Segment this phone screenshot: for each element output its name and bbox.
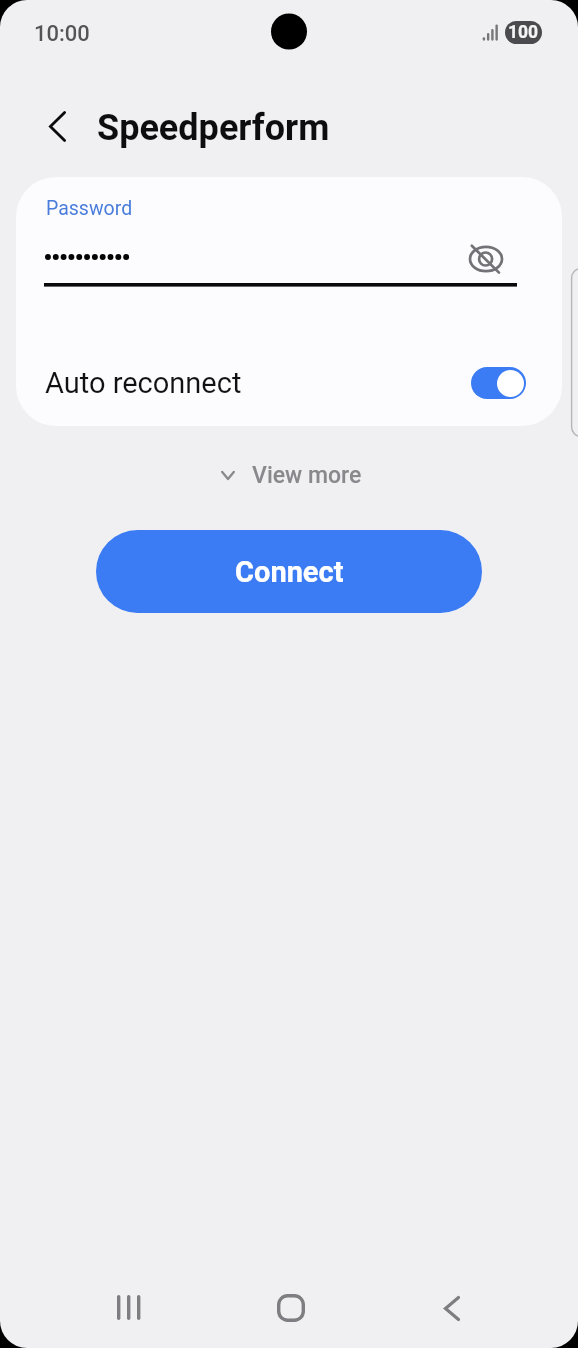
- staticText: 10:00: [34, 21, 90, 47]
- staticText: Password: [46, 197, 133, 220]
- staticText: Speedperform: [97, 107, 330, 149]
- button[interactable]: Back: [35, 104, 79, 148]
- button[interactable]: Connect: [96, 530, 482, 613]
- button[interactable]: Home: [193, 1264, 385, 1348]
- button[interactable]: Show password: [464, 237, 508, 281]
- button[interactable]: Auto reconnect: [16, 352, 562, 414]
- staticText: View more: [252, 462, 362, 489]
- button[interactable]: View more: [221, 461, 362, 489]
- staticText: Connect: [235, 555, 344, 589]
- staticText: Auto reconnect: [45, 366, 242, 400]
- staticText: 100: [508, 22, 539, 43]
- button[interactable]: Recent apps: [0, 1264, 193, 1348]
- button[interactable]: Back: [385, 1264, 578, 1348]
